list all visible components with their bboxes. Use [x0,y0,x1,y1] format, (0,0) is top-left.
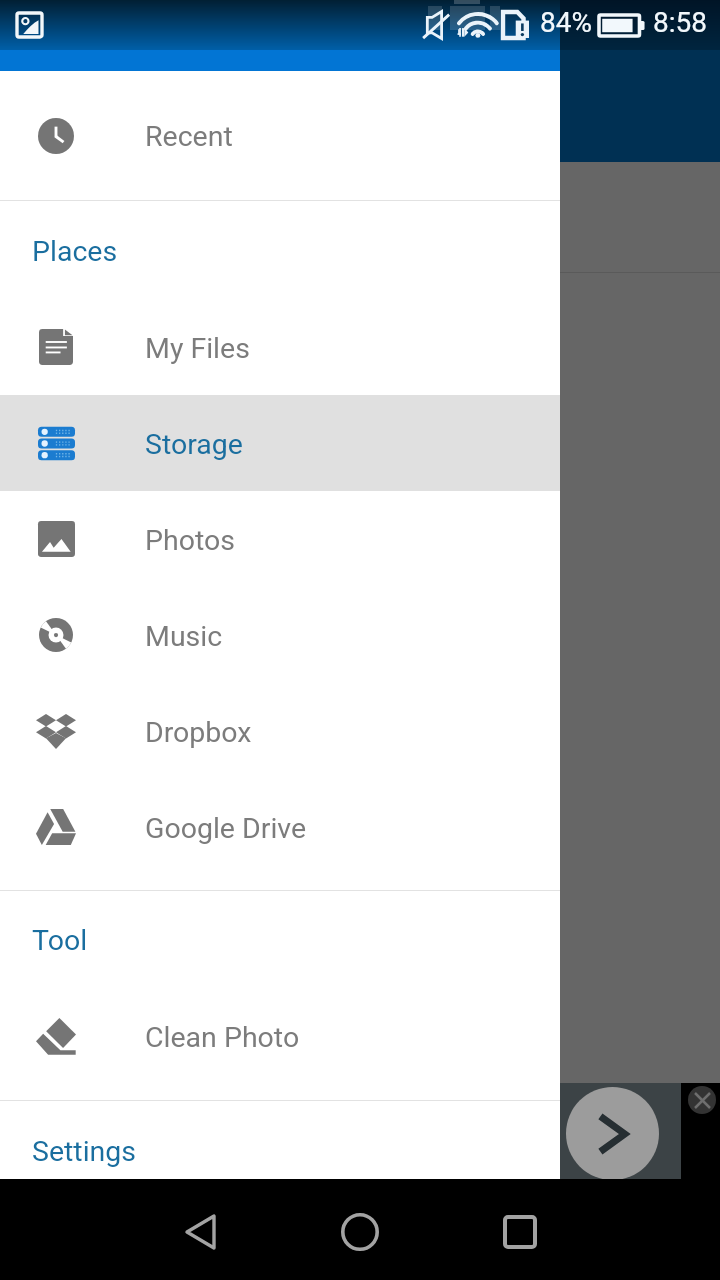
button[interactable]: Google Drive [0,779,560,875]
staticText: Dropbox [145,716,252,749]
staticText: Settings [32,1135,137,1168]
button[interactable]: Settings [0,1101,560,1200]
button[interactable]: Music [0,587,560,683]
staticText: Storage [145,428,243,461]
button[interactable]: Home [320,1192,400,1272]
button[interactable]: Expand recorder [560,1083,681,1184]
staticText: 8:58 [653,6,707,39]
staticText: My Files [145,332,250,365]
button[interactable]: My Files [0,299,560,395]
button[interactable]: Tool [0,891,560,988]
button[interactable]: Back [160,1192,240,1272]
button[interactable]: Recents [480,1192,560,1272]
button[interactable]: Clean Photo [0,988,560,1084]
button[interactable]: Recent [0,71,560,200]
staticText: Tool [32,924,88,957]
button[interactable]: Storage [0,395,560,491]
staticText: Photos [145,524,235,557]
button[interactable]: Dropbox [0,683,560,779]
button[interactable]: Places [0,201,560,299]
button[interactable]: Photos [0,491,560,587]
staticText: Music [145,620,223,653]
staticText: Recent [145,120,233,153]
staticText: Clean Photo [145,1021,300,1054]
staticText: Places [32,235,118,268]
staticText: Google Drive [145,812,307,845]
staticText: 84% [540,6,592,39]
button[interactable]: Close [688,1086,716,1114]
